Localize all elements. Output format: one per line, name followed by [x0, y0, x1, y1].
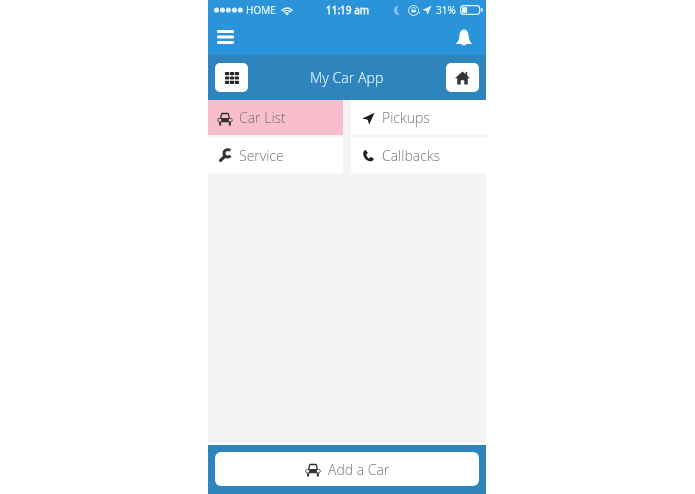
- button[interactable]: Home: [446, 63, 479, 92]
- staticText: My Car App: [310, 68, 384, 87]
- staticText: 11:19 am: [326, 3, 369, 17]
- button[interactable]: Add a Car: [215, 452, 479, 486]
- button[interactable]: Pickups: [351, 100, 486, 135]
- button[interactable]: Service: [208, 137, 343, 173]
- staticText: 31%: [436, 3, 456, 17]
- button[interactable]: Notifications: [451, 24, 477, 50]
- staticText: Car List: [239, 108, 286, 127]
- staticText: Service: [239, 146, 284, 165]
- button[interactable]: Car List: [208, 100, 343, 135]
- staticText: Add a Car: [328, 460, 390, 479]
- staticText: Pickups: [382, 108, 430, 127]
- staticText: HOME: [246, 3, 276, 17]
- button[interactable]: Menu: [211, 23, 239, 51]
- button[interactable]: Callbacks: [351, 137, 486, 173]
- button[interactable]: Apps: [215, 63, 248, 92]
- staticText: Callbacks: [382, 146, 441, 165]
